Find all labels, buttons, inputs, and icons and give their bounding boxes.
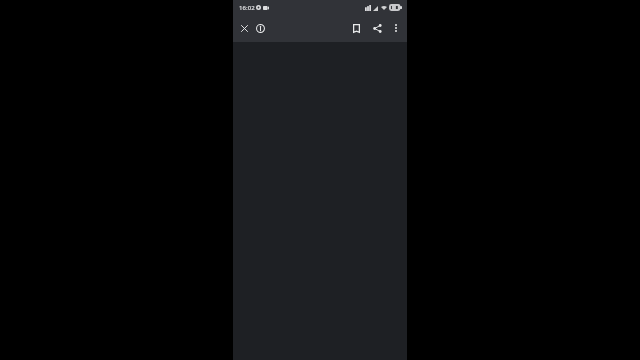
button[interactable]: Information <box>251 19 269 37</box>
button[interactable]: Close <box>235 19 253 37</box>
staticText: 16:02 <box>239 4 255 12</box>
button[interactable]: Share <box>368 19 386 37</box>
button[interactable]: More options <box>387 19 405 37</box>
button[interactable]: Bookmark <box>347 19 365 37</box>
